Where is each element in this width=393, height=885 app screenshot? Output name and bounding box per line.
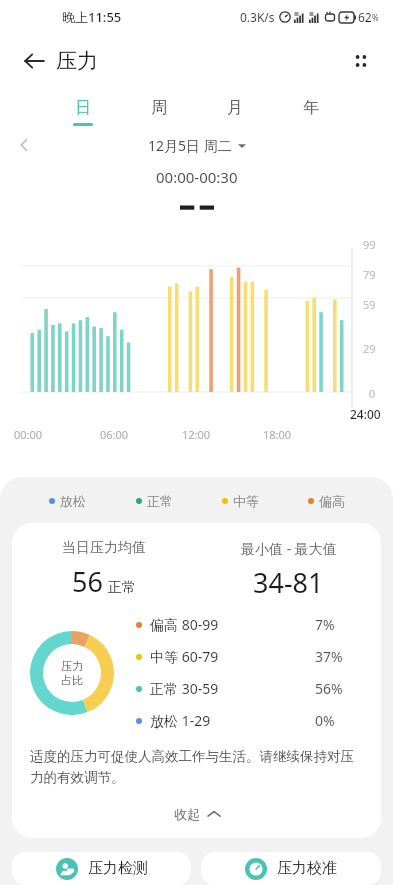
staticText: % xyxy=(372,12,379,23)
button[interactable]: More options xyxy=(341,41,381,81)
staticText: 放松 1-29 xyxy=(150,711,211,730)
button[interactable]: 年 xyxy=(286,94,336,130)
staticText: 压力校准 xyxy=(277,859,337,878)
staticText: 压力 xyxy=(56,48,98,74)
button[interactable]: 12月5日 周二 xyxy=(142,134,252,157)
staticText: 年 xyxy=(303,98,319,118)
staticText: 偏高 80-99 xyxy=(150,615,219,634)
staticText: 56% xyxy=(315,679,367,698)
staticText: 56 xyxy=(72,563,103,600)
staticText: 正常 xyxy=(147,493,173,509)
button[interactable]: Back xyxy=(14,41,54,81)
staticText: 0.3K/s xyxy=(240,9,275,25)
staticText: 00:00 xyxy=(14,427,43,442)
staticText: 收起 xyxy=(174,806,200,822)
staticText: 压力 xyxy=(61,659,83,673)
staticText: 占比 xyxy=(61,673,83,687)
button[interactable]: 收起 xyxy=(12,800,381,828)
staticText: 34-81 xyxy=(253,564,324,601)
staticText: 中等 xyxy=(233,493,259,509)
staticText: 0 xyxy=(369,386,376,401)
staticText: 00:00-00:30 xyxy=(156,167,238,187)
staticText: 正常 30-59 xyxy=(150,679,219,698)
staticText: 59 xyxy=(363,297,376,312)
staticText: 中等 60-79 xyxy=(150,647,219,666)
staticText: 12:00 xyxy=(182,427,211,442)
staticText: 晚上11:55 xyxy=(62,8,122,26)
button[interactable]: 当日压力均值 xyxy=(12,523,381,838)
staticText: 最小值 - 最大值 xyxy=(241,539,337,558)
staticText: 正常 xyxy=(108,579,136,597)
button[interactable]: Previous day xyxy=(8,130,40,160)
staticText: 79 xyxy=(363,267,376,282)
staticText: 月 xyxy=(227,98,243,118)
staticText: 偏高 xyxy=(319,493,345,509)
button[interactable]: 压力检测 xyxy=(12,852,191,885)
staticText: 适度的压力可促使人高效工作与生活。请继续保持对压力的有效调节。 xyxy=(30,748,363,786)
staticText: 12月5日 周二 xyxy=(148,136,232,155)
button[interactable]: 月 xyxy=(210,94,260,130)
staticText: 7% xyxy=(315,615,367,634)
staticText: 18:00 xyxy=(263,427,292,442)
button[interactable]: 日 xyxy=(58,94,108,130)
staticText: 06:00 xyxy=(100,427,129,442)
staticText: 日 xyxy=(75,98,91,118)
staticText: 99 xyxy=(363,237,376,252)
staticText: 24:00 xyxy=(350,406,381,422)
staticText: 29 xyxy=(363,341,376,356)
staticText: 周 xyxy=(151,98,167,118)
staticText: 当日压力均值 xyxy=(62,539,146,557)
staticText: 压力检测 xyxy=(88,859,148,878)
staticText: 放松 xyxy=(60,493,86,509)
staticText: 0% xyxy=(315,711,367,730)
staticText: 37% xyxy=(315,647,367,666)
button[interactable]: 压力校准 xyxy=(201,852,381,885)
staticText: 62 xyxy=(358,9,372,25)
button[interactable]: 周 xyxy=(134,94,184,130)
